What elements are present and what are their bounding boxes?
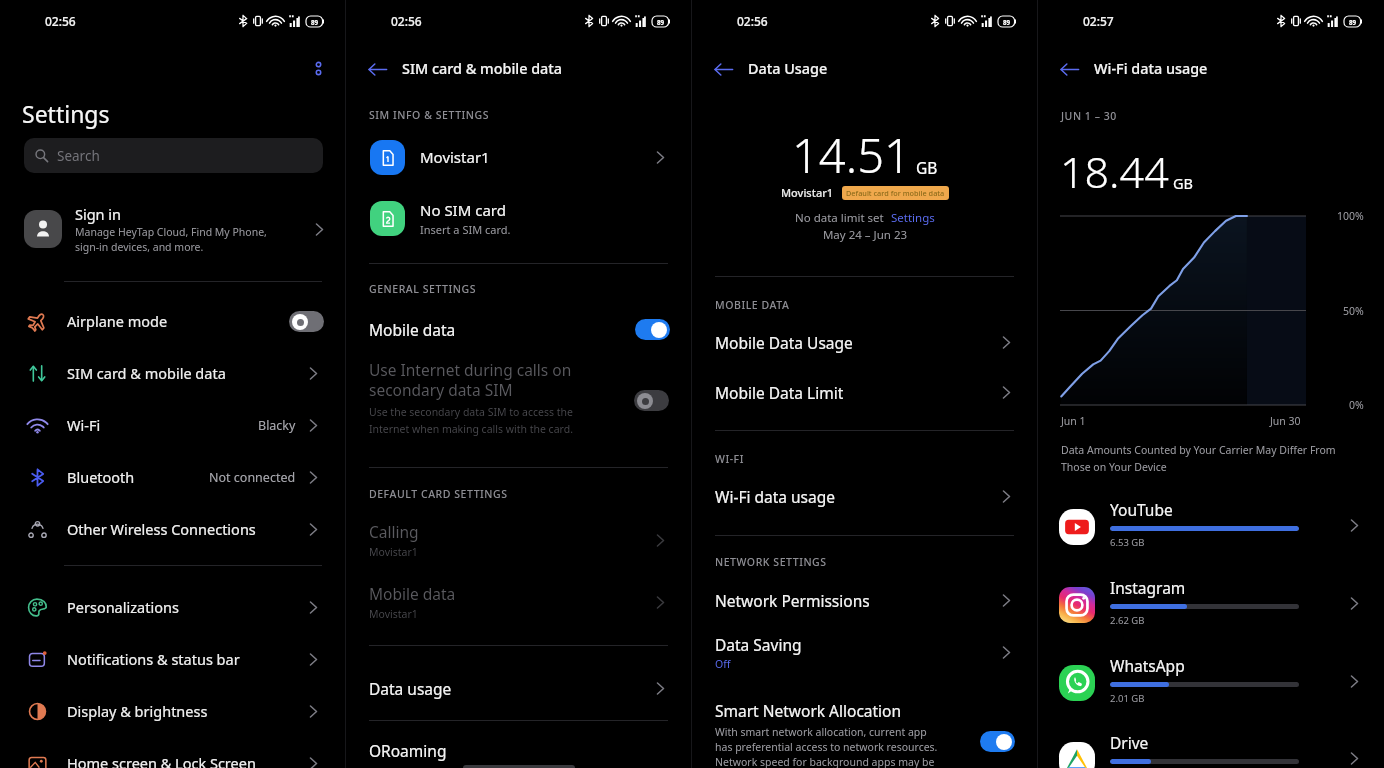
button[interactable]: Data Saving: [692, 628, 1038, 676]
staticText: SIM card & mobile data: [67, 363, 304, 383]
staticText: 02:56: [737, 13, 768, 29]
staticText: Instagram: [1110, 577, 1186, 598]
staticText: Default card for mobile data: [846, 188, 945, 198]
staticText: ORoaming: [369, 740, 447, 761]
button[interactable]: Personalizations: [0, 581, 346, 633]
staticText: GENERAL SETTINGS: [369, 282, 477, 296]
button[interactable]: Calling: [346, 516, 692, 564]
staticText: 02:56: [45, 13, 76, 29]
staticText: Movistar1: [781, 185, 834, 200]
staticText: Mobile Data Usage: [715, 332, 853, 353]
staticText: Insert a SIM card.: [420, 222, 511, 237]
staticText: Network Permissions: [715, 590, 870, 611]
staticText: Movistar1: [369, 545, 418, 559]
staticText: Drive: [1110, 732, 1149, 753]
staticText: Airplane mode: [67, 311, 289, 331]
staticText: GB: [916, 157, 938, 178]
staticText: 50%: [1343, 304, 1364, 318]
staticText: Mobile data: [369, 319, 456, 340]
staticText: Blacky: [258, 417, 296, 434]
staticText: WhatsApp: [1110, 655, 1185, 676]
button[interactable]: Home screen & Lock Screen: [0, 737, 346, 768]
button[interactable]: Wi-Fi: [0, 399, 346, 451]
staticText: JUN 1 – 30: [1061, 109, 1117, 123]
staticText: Smart Network Allocation: [715, 700, 902, 721]
staticText: MOBILE DATA: [715, 298, 790, 312]
staticText: Personalizations: [67, 597, 304, 617]
staticText: Mobile Data Limit: [715, 382, 844, 403]
button[interactable]: Other Wireless Connections: [0, 503, 346, 555]
staticText: Sign in: [75, 204, 122, 224]
button[interactable]: Wi-Fi data usage: [692, 473, 1038, 519]
button[interactable]: Mobile Data Limit: [692, 369, 1038, 415]
staticText: Wi-Fi data usage: [1094, 59, 1208, 79]
staticText: May 24 – Jun 23: [692, 227, 1038, 243]
staticText: Search: [57, 147, 100, 165]
button[interactable]: Settings: [891, 210, 935, 226]
button[interactable]: Mobile data: [346, 307, 692, 351]
staticText: Use the secondary data SIM to access the…: [369, 405, 573, 436]
staticText: Not connected: [209, 469, 296, 486]
staticText: 89: [1003, 18, 1011, 26]
button[interactable]: Display & brightness: [0, 685, 346, 737]
staticText: 89: [311, 18, 319, 26]
staticText: No SIM card: [420, 200, 506, 220]
button[interactable]: Movistar1: [346, 131, 692, 183]
staticText: Data Amounts Counted by Your Carrier May…: [1061, 443, 1336, 474]
button[interactable]: No SIM card: [346, 192, 692, 244]
staticText: Manage HeyTap Cloud, Find My Phone, sign…: [75, 225, 267, 254]
button[interactable]: Instagram: [1038, 576, 1384, 636]
staticText: Settings: [891, 210, 935, 226]
staticText: GB: [1173, 173, 1193, 193]
staticText: Notifications & status bar: [67, 649, 304, 669]
staticText: 14.51: [792, 123, 911, 187]
button[interactable]: Back: [708, 54, 738, 84]
button[interactable]: Smart Network Allocation: [692, 700, 1038, 768]
staticText: Display & brightness: [67, 701, 304, 721]
button[interactable]: Notifications & status bar: [0, 633, 346, 685]
staticText: 89: [657, 18, 665, 26]
button[interactable]: WhatsApp: [1038, 654, 1384, 714]
staticText: 100%: [1337, 209, 1364, 223]
button[interactable]: Airplane mode: [0, 295, 346, 347]
staticText: SIM card & mobile data: [402, 59, 563, 79]
staticText: With smart network allocation, current a…: [715, 725, 938, 768]
button[interactable]: Search: [24, 138, 323, 173]
button[interactable]: Use Internet during calls on secondary d…: [346, 359, 692, 436]
button[interactable]: More options: [306, 56, 330, 80]
button[interactable]: Bluetooth: [0, 451, 346, 503]
button[interactable]: SIM card & mobile data: [0, 347, 346, 399]
staticText: Jun 30: [1270, 414, 1301, 428]
staticText: 0%: [1349, 398, 1364, 412]
staticText: Settings: [22, 98, 110, 129]
staticText: Other Wireless Connections: [67, 519, 304, 539]
button[interactable]: Back: [362, 54, 392, 84]
button[interactable]: ORoaming: [346, 733, 692, 768]
staticText: Data Usage: [748, 59, 828, 79]
staticText: Off: [715, 657, 731, 671]
staticText: Data Saving: [715, 634, 802, 655]
button[interactable]: Drive: [1038, 731, 1384, 768]
staticText: 2.62 GB: [1110, 614, 1145, 627]
button[interactable]: Back: [1054, 54, 1084, 84]
staticText: Calling: [369, 521, 419, 542]
staticText: Movistar1: [420, 147, 651, 167]
button[interactable]: Data usage: [346, 662, 692, 714]
button[interactable]: YouTube: [1038, 498, 1384, 558]
staticText: Movistar1: [369, 607, 418, 621]
staticText: No data limit set: [795, 210, 884, 226]
staticText: 89: [1349, 18, 1357, 26]
staticText: YouTube: [1110, 499, 1173, 520]
button[interactable]: Network Permissions: [692, 577, 1038, 623]
staticText: Mobile data: [369, 583, 456, 604]
staticText: Wi-Fi data usage: [715, 486, 836, 507]
staticText: 2.01 GB: [1110, 692, 1145, 705]
staticText: 18.44: [1060, 142, 1169, 201]
button[interactable]: Mobile Data Usage: [692, 319, 1038, 365]
button[interactable]: Mobile data: [346, 578, 692, 626]
staticText: DEFAULT CARD SETTINGS: [369, 487, 508, 501]
staticText: Use Internet during calls on secondary d…: [369, 359, 572, 401]
staticText: NETWORK SETTINGS: [715, 555, 827, 569]
staticText: 02:56: [391, 13, 422, 29]
button[interactable]: Sign in: [0, 200, 346, 258]
